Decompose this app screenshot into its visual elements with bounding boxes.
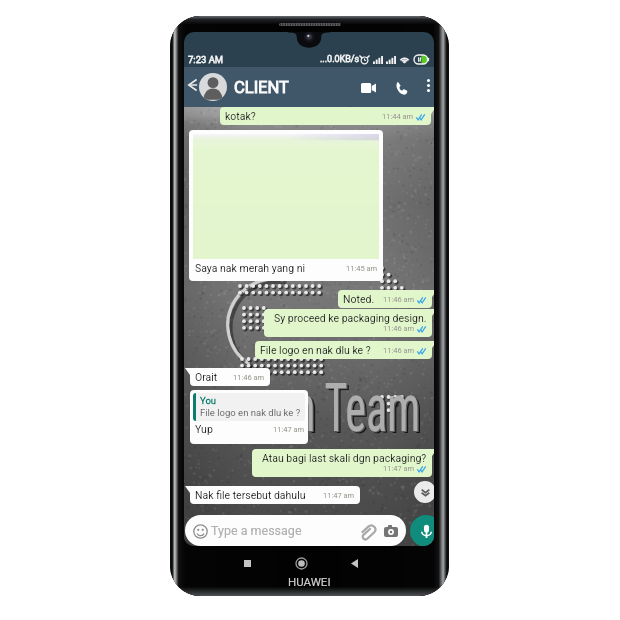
staticText: CLIENT	[234, 78, 289, 97]
staticText: Nak file tersebut dahulu	[195, 489, 306, 501]
staticText: Yup	[195, 423, 213, 435]
button[interactable]: Sy proceed ke packaging design.	[264, 309, 434, 337]
staticText: n Team	[297, 371, 423, 450]
button[interactable]: Orait	[185, 368, 270, 386]
button[interactable]: Emoji	[191, 522, 209, 540]
staticText: 11:47 am	[323, 491, 355, 500]
staticText: Type a message	[211, 523, 302, 538]
staticText: 11:46 am	[383, 324, 415, 333]
staticText: 11:45 am	[346, 264, 378, 273]
button[interactable]: You	[190, 390, 308, 444]
staticText: Saya nak merah yang ni	[195, 262, 305, 274]
staticText: File logo en nak dlu ke ?	[200, 407, 301, 418]
staticText: Atau bagi last skali dgn packaging?	[262, 452, 427, 464]
button[interactable]: Home	[293, 555, 309, 571]
button[interactable]: Back	[184, 76, 201, 94]
button[interactable]: Nak file tersebut dahulu	[185, 486, 360, 504]
staticText: 11:46 am	[233, 373, 265, 382]
staticText: n Team	[294, 369, 421, 448]
staticText: Sy proceed ke packaging design.	[274, 312, 427, 324]
button[interactable]: More options	[418, 75, 434, 95]
button[interactable]: Recents	[240, 556, 255, 571]
button[interactable]: kotak?	[220, 107, 434, 125]
button[interactable]: CLIENT	[234, 73, 344, 101]
button[interactable]: Camera	[381, 521, 400, 540]
staticText: kotak?	[225, 110, 256, 122]
staticText: You	[200, 395, 217, 406]
button[interactable]: Noted.	[338, 290, 434, 308]
button[interactable]: File logo en nak dlu ke ?	[255, 341, 434, 359]
staticText: 11:44 am	[382, 112, 414, 121]
button[interactable]: Back	[347, 556, 362, 571]
button[interactable]: Record voice message	[410, 515, 434, 546]
staticText: HUAWEI	[288, 575, 331, 588]
staticText: 11:47 am	[383, 464, 415, 473]
staticText: 11:46 am	[383, 346, 415, 355]
staticText: 11:47 am	[273, 425, 305, 434]
staticText: 7:23 AM	[188, 54, 224, 65]
button[interactable]: Video call	[356, 76, 380, 100]
button[interactable]: Atau bagi last skali dgn packaging?	[252, 449, 434, 477]
button[interactable]: Saya nak merah yang ni	[189, 130, 383, 281]
staticText: ...0.0KB/s	[320, 54, 360, 65]
staticText: 11:46 am	[383, 295, 415, 304]
staticText: Orait	[195, 371, 218, 383]
button[interactable]: Attach	[357, 521, 376, 540]
button[interactable]: Contact photo	[199, 73, 227, 101]
button[interactable]: Voice call	[389, 76, 413, 100]
staticText: File logo en nak dlu ke ?	[260, 344, 371, 356]
staticText: n Team	[295, 370, 422, 449]
button[interactable]: Scroll to bottom	[414, 481, 434, 503]
button[interactable]: Emoji	[185, 515, 406, 546]
staticText: Noted.	[343, 293, 375, 305]
